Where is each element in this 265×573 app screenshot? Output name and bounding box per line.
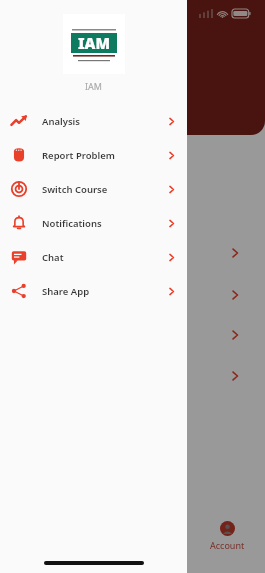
staticText: Switch Course bbox=[42, 183, 108, 196]
button[interactable]: Analysis bbox=[0, 104, 187, 138]
button[interactable]: Chat bbox=[0, 240, 187, 274]
staticText: IAM bbox=[78, 33, 110, 53]
staticText: Notifications bbox=[42, 217, 102, 230]
button[interactable]: Report Problem bbox=[0, 138, 187, 172]
staticText: Account bbox=[210, 539, 245, 551]
staticText: IAM bbox=[85, 80, 102, 92]
button[interactable]: Account bbox=[206, 517, 249, 555]
staticText: Analysis bbox=[42, 115, 80, 128]
staticText: Chat bbox=[42, 251, 64, 264]
staticText: Share App bbox=[42, 285, 90, 298]
button[interactable]: Share App bbox=[0, 274, 187, 308]
button[interactable]: Switch Course bbox=[0, 172, 187, 206]
button[interactable]: Notifications bbox=[0, 206, 187, 240]
staticText: Report Problem bbox=[42, 149, 115, 162]
